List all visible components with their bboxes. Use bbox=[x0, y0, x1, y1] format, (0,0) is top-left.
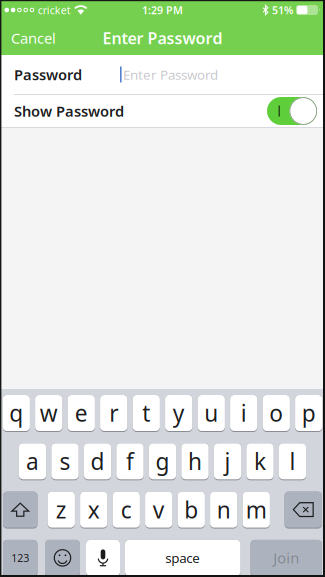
button[interactable]: i bbox=[230, 395, 257, 432]
button[interactable]: 123 bbox=[3, 540, 37, 577]
staticText: space bbox=[165, 549, 200, 567]
button[interactable]: m bbox=[243, 492, 270, 529]
button[interactable]: e bbox=[68, 395, 95, 432]
button[interactable]: a bbox=[19, 443, 46, 480]
button[interactable]: o bbox=[263, 395, 290, 432]
staticText: r bbox=[109, 398, 118, 428]
staticText: j bbox=[224, 446, 230, 476]
staticText: f bbox=[126, 446, 134, 476]
staticText: q bbox=[9, 398, 23, 428]
button[interactable]: g bbox=[149, 443, 176, 480]
staticText: Show Password bbox=[14, 101, 124, 121]
staticText: b bbox=[184, 494, 198, 525]
button[interactable]: Dictation bbox=[86, 540, 120, 577]
staticText: w bbox=[40, 398, 58, 428]
staticText: a bbox=[26, 446, 39, 476]
button[interactable]: f bbox=[116, 443, 144, 480]
staticText: k bbox=[254, 446, 266, 476]
button[interactable]: k bbox=[246, 443, 274, 480]
staticText: m bbox=[246, 494, 267, 525]
button[interactable]: space bbox=[125, 540, 240, 577]
staticText: Enter Password bbox=[102, 27, 222, 49]
staticText: h bbox=[188, 446, 202, 476]
button[interactable]: Shift bbox=[3, 492, 37, 529]
button[interactable]: x bbox=[80, 492, 107, 529]
staticText: 51% bbox=[272, 3, 293, 17]
button[interactable]: n bbox=[210, 492, 237, 529]
button[interactable]: w bbox=[35, 395, 62, 432]
staticText: u bbox=[204, 398, 218, 428]
button[interactable]: Cancel bbox=[0, 22, 56, 54]
button[interactable]: z bbox=[48, 492, 75, 529]
staticText: n bbox=[217, 494, 231, 525]
staticText: Enter Password bbox=[123, 66, 218, 83]
button[interactable]: u bbox=[198, 395, 225, 432]
staticText: z bbox=[56, 494, 67, 525]
staticText: t bbox=[142, 398, 150, 428]
staticText: g bbox=[155, 446, 169, 476]
button[interactable]: s bbox=[51, 443, 79, 480]
staticText: d bbox=[90, 446, 104, 476]
staticText: y bbox=[173, 398, 185, 428]
button[interactable]: b bbox=[178, 492, 205, 529]
button[interactable]: Emoji bbox=[45, 540, 80, 577]
button[interactable]: v bbox=[145, 492, 172, 529]
staticText: o bbox=[269, 398, 283, 428]
staticText: x bbox=[88, 494, 100, 525]
staticText: Join bbox=[273, 548, 299, 568]
button[interactable]: c bbox=[113, 492, 140, 529]
button[interactable]: r bbox=[100, 395, 127, 432]
staticText: Cancel bbox=[11, 28, 56, 48]
button[interactable]: h bbox=[181, 443, 209, 480]
button[interactable]: q bbox=[3, 395, 30, 432]
button[interactable]: Show Password bbox=[267, 97, 317, 125]
button[interactable]: Password bbox=[0, 55, 325, 94]
button[interactable]: y bbox=[165, 395, 192, 432]
button[interactable]: Join bbox=[250, 540, 322, 577]
staticText: l bbox=[289, 446, 295, 476]
button[interactable]: t bbox=[133, 395, 160, 432]
button[interactable]: p bbox=[295, 395, 322, 432]
staticText: e bbox=[75, 398, 88, 428]
staticText: v bbox=[153, 494, 165, 525]
staticText: c bbox=[121, 494, 132, 525]
staticText: p bbox=[302, 398, 316, 428]
button[interactable]: j bbox=[214, 443, 241, 480]
button[interactable]: d bbox=[84, 443, 111, 480]
staticText: cricket bbox=[38, 3, 71, 17]
button[interactable]: l bbox=[279, 443, 306, 480]
staticText: 1:29 PM bbox=[142, 3, 183, 17]
staticText: i bbox=[241, 398, 247, 428]
staticText: 123 bbox=[11, 551, 29, 565]
button[interactable]: Delete bbox=[284, 492, 322, 529]
staticText: Password bbox=[14, 65, 82, 84]
staticText: s bbox=[59, 446, 70, 476]
